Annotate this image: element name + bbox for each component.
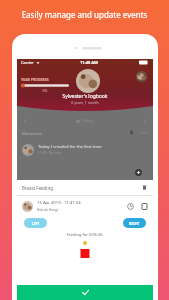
button[interactable]: Next day — [141, 117, 149, 125]
staticText: LEFT — [32, 221, 40, 226]
staticText: Carrier — [21, 60, 35, 65]
staticText: Easily manage and update events — [0, 9, 169, 20]
button[interactable]: Today I crawled for the first time — [22, 141, 148, 158]
button[interactable]: Save — [141, 203, 148, 210]
button[interactable]: Book — [129, 130, 134, 135]
button[interactable]: LEFT — [24, 218, 47, 228]
staticText: 11:48 AM — [80, 60, 98, 65]
staticText: 11:39 • No note — [38, 151, 62, 155]
button[interactable]: Delete — [141, 184, 148, 191]
button[interactable]: Profile — [136, 71, 147, 82]
staticText: Breast Feeding — [22, 185, 53, 191]
staticText: Today I crawled for the first time — [38, 144, 102, 150]
button[interactable]: More options — [140, 130, 148, 135]
button[interactable]: Child photo — [76, 69, 100, 93]
staticText: Memories — [22, 131, 42, 137]
staticText: YEAR PROGRESS — [21, 77, 49, 82]
staticText: Feeding for 0:06:36. — [17, 232, 153, 237]
button[interactable]: Breast Feeding — [22, 180, 148, 195]
button[interactable]: Add — [135, 169, 142, 176]
button[interactable]: RIGHT — [123, 218, 146, 228]
staticText: Rob de Knegt — [37, 207, 59, 212]
staticText: 15 Apr 2019 - 11:41:54 — [37, 200, 81, 206]
button[interactable]: Time — [127, 203, 134, 210]
staticText: Today — [81, 118, 93, 124]
button[interactable]: Confirm — [17, 285, 153, 300]
staticText: RIGHT — [129, 221, 140, 226]
staticText: 0% — [21, 88, 69, 93]
button[interactable]: Previous day — [21, 117, 29, 125]
staticText: Sylvester's logbook — [17, 93, 153, 100]
staticText: 0 years, 1 month — [17, 100, 153, 105]
